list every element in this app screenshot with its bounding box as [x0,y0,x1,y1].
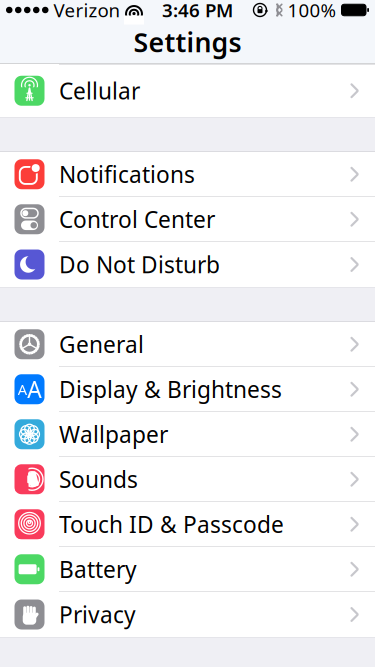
staticText: 3:46 PM [162,0,233,22]
staticText: Notifications [59,159,195,189]
staticText: Control Center [59,204,215,234]
button[interactable]: Battery [0,547,375,592]
staticText: A [18,379,27,399]
button[interactable]: Do Not Disturb [0,242,375,287]
staticText: Touch ID & Passcode [59,509,284,539]
staticText: Privacy [59,599,136,629]
button[interactable]: Cellular [0,64,375,117]
button[interactable]: General [0,322,375,367]
staticText: Display & Brightness [59,374,282,404]
staticText: Verizon [53,0,120,22]
button[interactable]: Wallpaper [0,412,375,457]
staticText: Cellular [59,76,140,106]
staticText: Battery [59,554,137,584]
button[interactable]: Sounds [0,457,375,502]
button[interactable]: A [0,367,375,412]
staticText: Do Not Disturb [59,249,220,279]
staticText: Wallpaper [59,419,168,449]
button[interactable]: Privacy [0,592,375,637]
staticText: Sounds [59,464,138,494]
staticText: A [27,374,41,404]
button[interactable]: Control Center [0,197,375,242]
staticText: General [59,329,144,359]
button[interactable]: Touch ID & Passcode [0,502,375,547]
button[interactable]: Notifications [0,152,375,197]
staticText: 100% [287,0,336,22]
staticText: Settings [133,24,241,60]
